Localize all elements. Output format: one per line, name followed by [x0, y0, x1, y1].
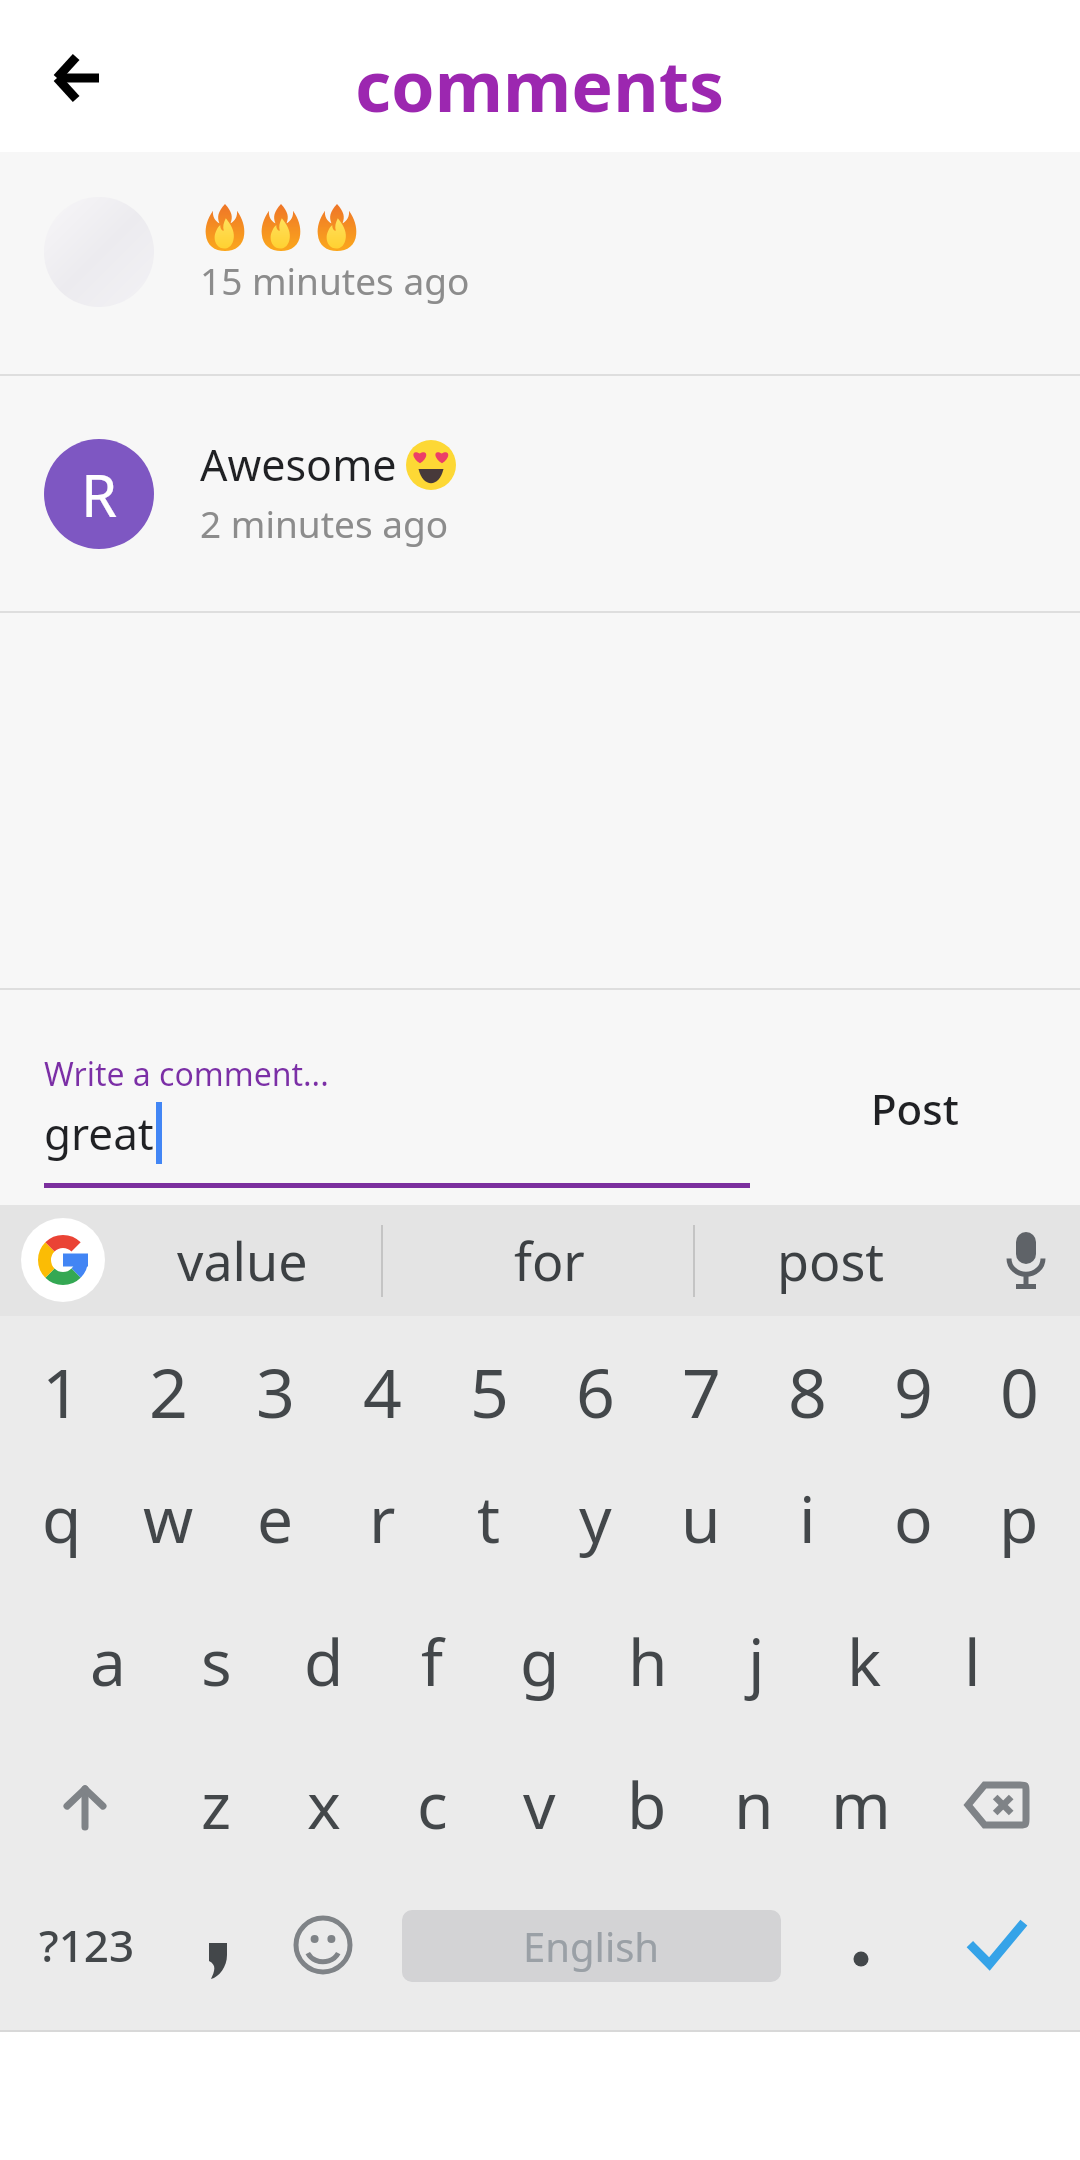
- staticText: u: [681, 1475, 721, 1562]
- staticText: e: [257, 1475, 294, 1562]
- button[interactable]: c: [378, 1745, 486, 1888]
- staticText: great: [44, 1103, 154, 1163]
- button[interactable]: k: [810, 1602, 918, 1745]
- staticText: 8: [788, 1345, 827, 1438]
- button[interactable]: x: [270, 1745, 378, 1888]
- button[interactable]: v: [486, 1745, 593, 1888]
- staticText: q: [42, 1475, 82, 1562]
- button[interactable]: value: [122, 1205, 362, 1316]
- button[interactable]: 8: [754, 1316, 860, 1459]
- button[interactable]: o: [860, 1459, 966, 1602]
- staticText: 2: [149, 1345, 188, 1438]
- button[interactable]: d: [270, 1602, 378, 1745]
- staticText: 0: [1000, 1345, 1039, 1438]
- staticText: post: [777, 1225, 885, 1296]
- staticText: value: [177, 1225, 308, 1296]
- staticText: Write a comment...: [44, 1052, 329, 1096]
- staticText: b: [627, 1761, 667, 1848]
- staticText: t: [477, 1475, 501, 1562]
- staticText: x: [307, 1761, 341, 1848]
- staticText: i: [799, 1475, 816, 1562]
- staticText: w: [143, 1475, 194, 1562]
- staticText: f: [421, 1618, 444, 1705]
- button[interactable]: 7: [648, 1316, 754, 1459]
- staticText: 2 minutes ago: [200, 498, 449, 548]
- button[interactable]: [0, 1745, 162, 1888]
- button[interactable]: [914, 1888, 1080, 2030]
- button[interactable]: [269, 1888, 376, 2030]
- button[interactable]: n: [700, 1745, 807, 1888]
- button[interactable]: 3: [222, 1316, 329, 1459]
- button[interactable]: h: [594, 1602, 702, 1745]
- button[interactable]: 0: [966, 1316, 1072, 1459]
- staticText: z: [201, 1761, 232, 1848]
- staticText: r: [369, 1475, 396, 1562]
- button[interactable]: z: [162, 1745, 270, 1888]
- button[interactable]: s: [162, 1602, 270, 1745]
- button[interactable]: 4: [329, 1316, 436, 1459]
- button[interactable]: [40, 40, 116, 116]
- button[interactable]: t: [436, 1459, 542, 1602]
- button[interactable]: [914, 1745, 1080, 1888]
- staticText: comments: [355, 37, 725, 132]
- button[interactable]: y: [542, 1459, 648, 1602]
- button[interactable]: [162, 1888, 269, 2030]
- button[interactable]: [990, 1225, 1062, 1297]
- staticText: n: [734, 1761, 774, 1848]
- button[interactable]: p: [966, 1459, 1072, 1602]
- button[interactable]: w: [115, 1459, 222, 1602]
- staticText: 6: [576, 1345, 615, 1438]
- staticText: ?123: [39, 1915, 135, 1975]
- staticText: o: [894, 1475, 933, 1562]
- staticText: for: [514, 1225, 585, 1296]
- staticText: 3: [256, 1345, 295, 1438]
- staticText: English: [523, 1919, 660, 1973]
- button[interactable]: 15 minutes ago: [0, 152, 1080, 376]
- button[interactable]: 2: [115, 1316, 222, 1459]
- button[interactable]: for: [404, 1205, 694, 1316]
- button[interactable]: 5: [436, 1316, 542, 1459]
- button[interactable]: [21, 1218, 105, 1302]
- staticText: h: [628, 1618, 668, 1705]
- staticText: 5: [470, 1345, 509, 1438]
- staticText: c: [417, 1761, 448, 1848]
- button[interactable]: r: [329, 1459, 436, 1602]
- button[interactable]: m: [807, 1745, 914, 1888]
- staticText: k: [847, 1618, 882, 1705]
- button[interactable]: q: [8, 1459, 115, 1602]
- button[interactable]: i: [754, 1459, 860, 1602]
- button[interactable]: f: [378, 1602, 486, 1745]
- button[interactable]: 1: [8, 1316, 115, 1459]
- staticText: l: [964, 1618, 981, 1705]
- staticText: m: [831, 1761, 891, 1848]
- staticText: j: [748, 1618, 765, 1705]
- button[interactable]: u: [648, 1459, 754, 1602]
- button[interactable]: j: [702, 1602, 810, 1745]
- button[interactable]: Write a comment...: [44, 1044, 750, 1194]
- button[interactable]: English: [376, 1888, 807, 2030]
- staticText: p: [999, 1475, 1039, 1562]
- button[interactable]: R: [0, 376, 1080, 613]
- staticText: s: [201, 1618, 232, 1705]
- button[interactable]: 9: [860, 1316, 966, 1459]
- staticText: a: [90, 1618, 126, 1705]
- button[interactable]: post: [716, 1205, 946, 1316]
- staticText: Awesome: [200, 435, 397, 494]
- button[interactable]: ?123: [0, 1888, 162, 2030]
- button[interactable]: e: [222, 1459, 329, 1602]
- staticText: 7: [682, 1345, 721, 1438]
- staticText: g: [520, 1618, 560, 1705]
- button[interactable]: l: [918, 1602, 1026, 1745]
- staticText: 9: [894, 1345, 933, 1438]
- button[interactable]: Post: [871, 1080, 959, 1137]
- button[interactable]: g: [486, 1602, 594, 1745]
- button[interactable]: b: [593, 1745, 700, 1888]
- staticText: v: [523, 1761, 556, 1848]
- button[interactable]: [807, 1888, 914, 2030]
- button[interactable]: 6: [542, 1316, 648, 1459]
- staticText: y: [579, 1475, 612, 1562]
- staticText: 1: [42, 1345, 81, 1438]
- button[interactable]: a: [54, 1602, 162, 1745]
- staticText: 4: [363, 1345, 402, 1438]
- staticText: 15 minutes ago: [200, 255, 470, 305]
